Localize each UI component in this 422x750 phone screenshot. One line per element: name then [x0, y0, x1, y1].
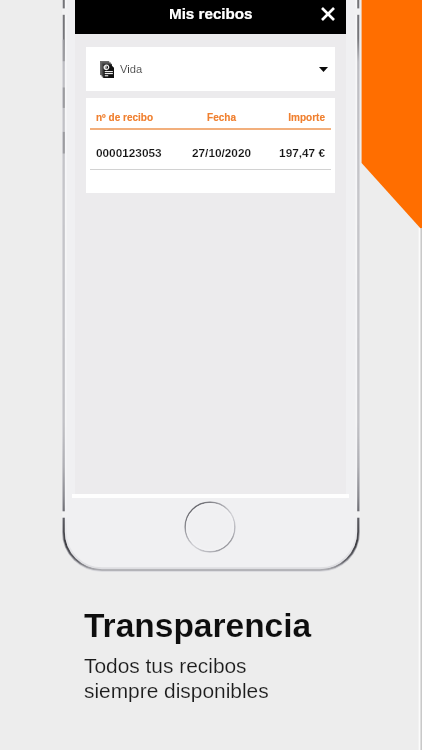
staticText: Fecha	[187, 112, 256, 123]
button[interactable]: Cerrar	[310, 0, 346, 31]
staticText: 197,47 €	[256, 146, 325, 159]
staticText: Mis recibos	[169, 5, 253, 22]
staticText: Vida	[120, 63, 143, 76]
staticText: Importe	[256, 112, 325, 123]
staticText: Transparencia	[84, 607, 312, 644]
staticText: 0000123053	[96, 146, 187, 159]
staticText: 27/10/2020	[187, 146, 256, 159]
staticText: nº de recibo	[96, 112, 187, 123]
button[interactable]: 0000123053	[96, 146, 325, 159]
staticText: Todos tus recibos siempre disponibles	[84, 654, 269, 702]
button[interactable]: Vida	[86, 47, 335, 91]
